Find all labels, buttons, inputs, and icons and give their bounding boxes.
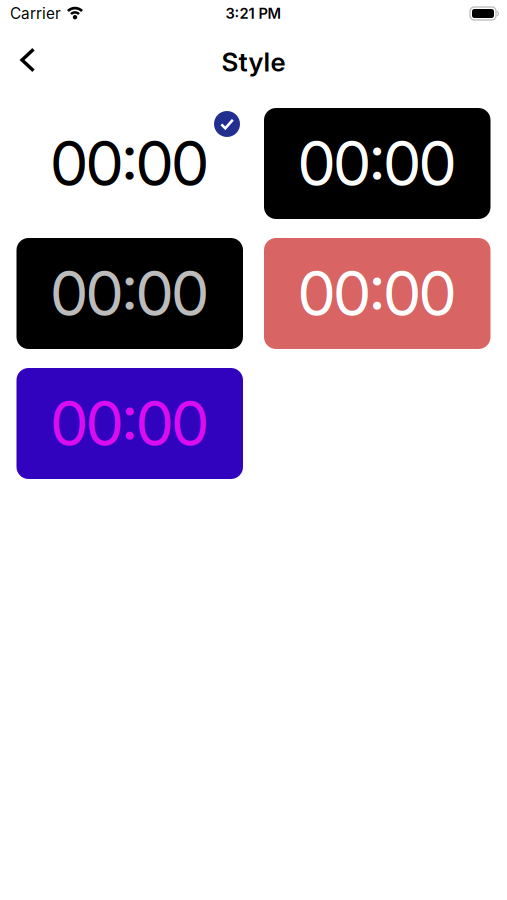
staticText: 00:00: [297, 256, 457, 331]
button[interactable]: 00:00: [16, 368, 243, 479]
button[interactable]: Back: [0, 31, 36, 88]
button[interactable]: 00:00: [264, 238, 490, 349]
button[interactable]: 00:00: [264, 108, 490, 219]
staticText: 00:00: [50, 256, 210, 331]
staticText: 00:00: [50, 126, 210, 201]
staticText: 00:00: [297, 126, 457, 201]
staticText: 00:00: [50, 386, 210, 461]
staticText: Carrier: [10, 4, 61, 23]
staticText: 3:21 PM: [225, 5, 281, 22]
button[interactable]: 00:00: [16, 108, 243, 219]
staticText: Style: [221, 46, 285, 78]
button[interactable]: 00:00: [16, 238, 243, 349]
